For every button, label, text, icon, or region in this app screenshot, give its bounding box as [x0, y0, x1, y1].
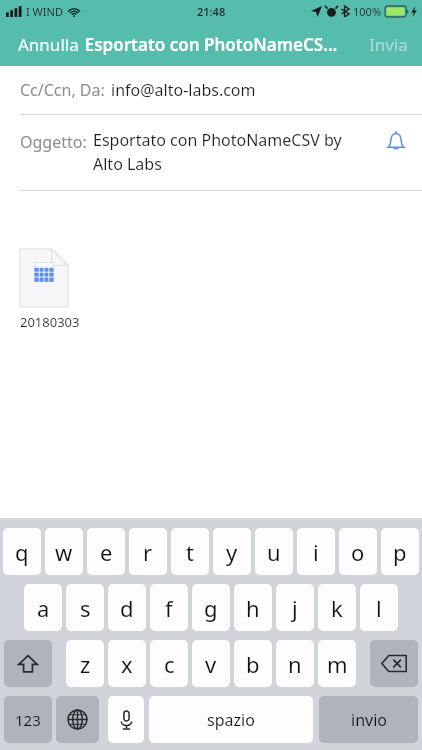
- staticText: g: [204, 593, 218, 623]
- button[interactable]: q: [3, 528, 41, 575]
- button[interactable]: Oggetto:: [0, 115, 422, 190]
- button[interactable]: l: [360, 584, 398, 631]
- staticText: Invia: [369, 33, 408, 56]
- button[interactable]: invio: [319, 696, 418, 743]
- staticText: a: [37, 593, 50, 623]
- staticText: k: [331, 593, 343, 623]
- staticText: q: [15, 537, 29, 567]
- staticText: Annulla: [18, 33, 79, 56]
- staticText: x: [121, 649, 133, 679]
- staticText: f: [165, 593, 173, 623]
- staticText: c: [164, 649, 175, 679]
- staticText: spazio: [207, 709, 255, 731]
- button[interactable]: x: [108, 640, 146, 687]
- button[interactable]: Dettatura: [108, 696, 144, 743]
- staticText: invio: [351, 709, 387, 731]
- button[interactable]: e: [87, 528, 125, 575]
- staticText: n: [288, 649, 302, 679]
- button[interactable]: Cc/Ccn, Da:: [0, 66, 422, 114]
- button[interactable]: t: [171, 528, 209, 575]
- button[interactable]: n: [276, 640, 314, 687]
- staticText: t: [186, 537, 194, 567]
- staticText: z: [80, 649, 91, 679]
- staticText: Esportato con PhotoNameCSV…: [84, 33, 338, 56]
- staticText: Oggetto:: [20, 131, 87, 153]
- button[interactable]: 123: [4, 696, 52, 743]
- staticText: Esportato con PhotoNameCSV by Alto Labs: [93, 129, 364, 175]
- staticText: 123: [15, 710, 41, 730]
- button[interactable]: d: [108, 584, 146, 631]
- button[interactable]: z: [66, 640, 104, 687]
- staticText: l: [376, 593, 382, 623]
- staticText: Cc/Ccn, Da:: [20, 79, 105, 101]
- button[interactable]: v: [192, 640, 230, 687]
- button[interactable]: Annulla: [0, 23, 97, 66]
- button[interactable]: c: [150, 640, 188, 687]
- staticText: 100%: [353, 4, 382, 19]
- staticText: v: [205, 649, 217, 679]
- button[interactable]: i: [297, 528, 335, 575]
- button[interactable]: Invia: [355, 23, 422, 66]
- button[interactable]: Allegato 20180303: [20, 249, 80, 331]
- staticText: m: [327, 649, 348, 679]
- staticText: y: [226, 537, 238, 567]
- button[interactable]: k: [318, 584, 356, 631]
- staticText: 21:48: [197, 4, 226, 19]
- staticText: h: [246, 593, 260, 623]
- staticText: I WIND: [26, 4, 63, 19]
- button[interactable]: o: [339, 528, 377, 575]
- button[interactable]: g: [192, 584, 230, 631]
- button[interactable]: Backspace: [370, 640, 418, 687]
- staticText: w: [55, 537, 73, 567]
- button[interactable]: y: [213, 528, 251, 575]
- button[interactable]: w: [45, 528, 83, 575]
- staticText: e: [100, 537, 113, 567]
- staticText: d: [120, 593, 134, 623]
- button[interactable]: a: [24, 584, 62, 631]
- staticText: 20180303: [20, 313, 80, 331]
- staticText: s: [80, 593, 91, 623]
- button[interactable]: Cambia tastiera: [56, 696, 99, 743]
- button[interactable]: spazio: [149, 696, 313, 743]
- staticText: r: [143, 537, 153, 567]
- button[interactable]: u: [255, 528, 293, 575]
- button[interactable]: j: [276, 584, 314, 631]
- staticText: info@alto-labs.com: [111, 79, 256, 101]
- button[interactable]: b: [234, 640, 272, 687]
- staticText: j: [292, 593, 298, 623]
- button[interactable]: m: [318, 640, 356, 687]
- button[interactable]: r: [129, 528, 167, 575]
- staticText: b: [246, 649, 260, 679]
- button[interactable]: s: [66, 584, 104, 631]
- staticText: u: [267, 537, 281, 567]
- button[interactable]: Notifiche: [370, 115, 422, 167]
- button[interactable]: Maiuscole: [4, 640, 52, 687]
- staticText: i: [313, 537, 319, 567]
- staticText: o: [351, 537, 365, 567]
- button[interactable]: h: [234, 584, 272, 631]
- button[interactable]: f: [150, 584, 188, 631]
- button[interactable]: p: [381, 528, 419, 575]
- staticText: p: [393, 537, 407, 567]
